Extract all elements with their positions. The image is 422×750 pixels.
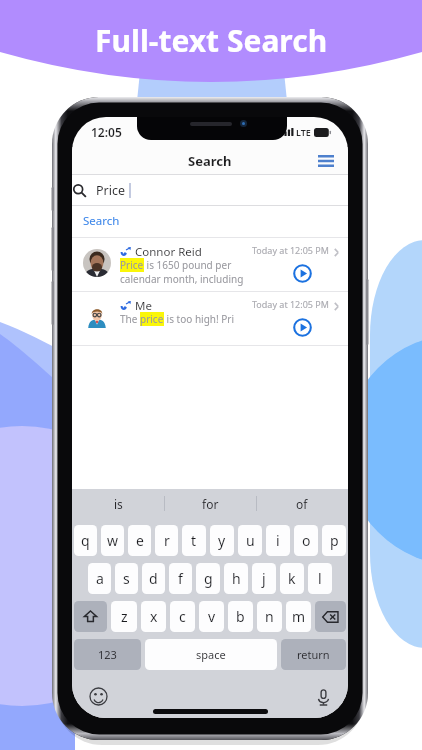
- button[interactable]: d: [142, 563, 165, 594]
- button[interactable]: b: [228, 601, 253, 632]
- staticText: i: [276, 531, 280, 550]
- button[interactable]: h: [224, 563, 248, 594]
- staticText: m: [292, 607, 306, 626]
- staticText: d: [149, 569, 158, 588]
- button[interactable]: y: [210, 525, 234, 556]
- button[interactable]: return: [281, 639, 346, 670]
- staticText: l: [318, 569, 322, 588]
- staticText: c: [179, 607, 186, 626]
- button[interactable]: Play recording: [293, 318, 312, 337]
- button[interactable]: p: [322, 525, 346, 556]
- button[interactable]: x: [141, 601, 166, 632]
- staticText: k: [288, 569, 296, 588]
- button[interactable]: t: [182, 525, 206, 556]
- staticText: x: [150, 607, 158, 626]
- button[interactable]: Play recording: [293, 264, 312, 283]
- staticText: space: [196, 647, 226, 662]
- staticText: e: [136, 531, 144, 550]
- staticText: calendar month, including: [120, 272, 244, 286]
- button[interactable]: s: [115, 563, 138, 594]
- staticText: s: [123, 569, 130, 588]
- staticText: t: [191, 531, 197, 550]
- button[interactable]: Menu: [312, 147, 340, 175]
- button[interactable]: m: [286, 601, 311, 632]
- button[interactable]: e: [128, 525, 151, 556]
- button[interactable]: for: [164, 489, 256, 518]
- button[interactable]: r: [155, 525, 178, 556]
- staticText: Search: [188, 152, 232, 170]
- staticText: h: [232, 569, 241, 588]
- staticText: Today at 12:05 PM: [252, 244, 329, 256]
- staticText: g: [204, 569, 213, 588]
- staticText: is: [114, 496, 123, 512]
- staticText: for: [202, 496, 219, 512]
- button[interactable]: Shift: [74, 601, 107, 632]
- staticText: of: [296, 496, 308, 512]
- button[interactable]: v: [199, 601, 224, 632]
- staticText: 12:05: [91, 124, 122, 140]
- button[interactable]: k: [280, 563, 304, 594]
- staticText: r: [164, 531, 170, 550]
- button[interactable]: Connor Reid: [72, 237, 348, 291]
- staticText: a: [96, 569, 104, 588]
- button[interactable]: 123: [74, 639, 141, 670]
- button[interactable]: f: [169, 563, 192, 594]
- staticText: q: [81, 531, 90, 550]
- button[interactable]: o: [294, 525, 318, 556]
- button[interactable]: a: [88, 563, 111, 594]
- button[interactable]: q: [74, 525, 97, 556]
- button[interactable]: c: [170, 601, 195, 632]
- staticText: z: [121, 607, 128, 626]
- button[interactable]: i: [266, 525, 290, 556]
- staticText: Search: [83, 213, 120, 229]
- staticText: LTE: [296, 126, 311, 138]
- staticText: n: [265, 607, 274, 626]
- button[interactable]: Me: [72, 291, 348, 345]
- staticText: Price: [96, 182, 126, 199]
- staticText: w: [107, 531, 119, 550]
- button[interactable]: of: [256, 489, 348, 518]
- staticText: o: [302, 531, 311, 550]
- staticText: is too high! Pri: [164, 312, 235, 326]
- staticText: 123: [98, 647, 117, 662]
- staticText: Connor Reid: [135, 244, 202, 260]
- staticText: is 1650 pound per: [144, 258, 232, 272]
- button[interactable]: g: [196, 563, 220, 594]
- staticText: Full-text Search: [95, 20, 328, 61]
- button[interactable]: Price: [72, 175, 348, 205]
- staticText: v: [208, 607, 216, 626]
- staticText: Price: [120, 258, 144, 272]
- button[interactable]: Dictation: [315, 689, 332, 706]
- staticText: y: [218, 531, 226, 550]
- button[interactable]: j: [252, 563, 276, 594]
- staticText: j: [262, 569, 266, 588]
- button[interactable]: Emoji keyboard: [89, 687, 108, 706]
- staticText: u: [246, 531, 255, 550]
- button[interactable]: l: [308, 563, 332, 594]
- staticText: f: [178, 569, 183, 588]
- button[interactable]: space: [145, 639, 277, 670]
- staticText: p: [330, 531, 339, 550]
- staticText: The: [120, 312, 140, 326]
- staticText: return: [297, 647, 330, 662]
- staticText: Me: [135, 298, 152, 314]
- button[interactable]: w: [101, 525, 124, 556]
- button[interactable]: Backspace: [315, 601, 346, 632]
- button[interactable]: z: [111, 601, 137, 632]
- staticText: b: [236, 607, 245, 626]
- button[interactable]: n: [257, 601, 282, 632]
- button[interactable]: u: [238, 525, 262, 556]
- staticText: Today at 12:05 PM: [252, 298, 329, 310]
- button[interactable]: is: [72, 489, 164, 518]
- staticText: price: [140, 312, 164, 326]
